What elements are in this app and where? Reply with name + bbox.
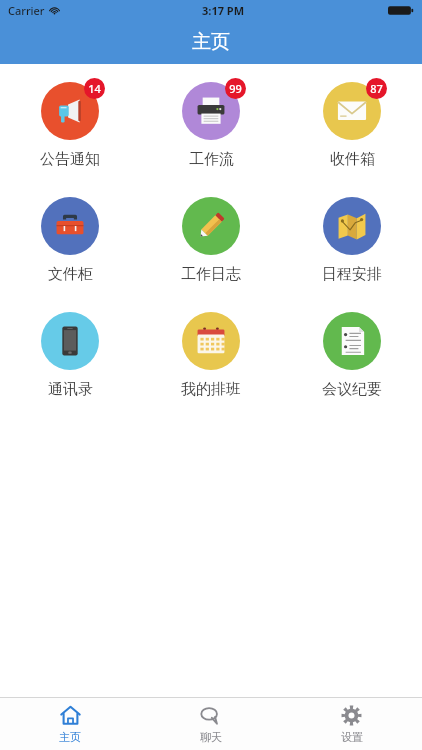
button[interactable]: 会议纪要 [311, 310, 393, 401]
staticText: 14 [88, 81, 101, 96]
staticText: 87 [370, 81, 383, 96]
staticText: 主页 [59, 730, 81, 744]
staticText: 文件柜 [48, 265, 93, 284]
staticText: 聊天 [200, 730, 222, 744]
button[interactable]: 我的排班 [170, 310, 252, 401]
button[interactable]: 设置 [281, 698, 422, 750]
staticText: 会议纪要 [322, 380, 382, 399]
staticText: 3:17 PM [202, 3, 245, 18]
staticText: Carrier [8, 3, 45, 18]
staticText: 工作日志 [181, 265, 241, 284]
staticText: 设置 [341, 730, 363, 744]
button[interactable]: 87 [311, 80, 393, 171]
staticText: 公告通知 [40, 150, 100, 169]
button[interactable]: 14 [29, 80, 111, 171]
button[interactable]: 工作日志 [170, 195, 252, 286]
button[interactable]: 文件柜 [29, 195, 111, 286]
staticText: 我的排班 [181, 380, 241, 399]
button[interactable]: 通讯录 [29, 310, 111, 401]
staticText: 通讯录 [48, 380, 93, 399]
staticText: 主页 [192, 30, 230, 54]
button[interactable]: 日程安排 [311, 195, 393, 286]
staticText: 日程安排 [322, 265, 382, 284]
button[interactable]: 聊天 [140, 698, 281, 750]
button[interactable]: 99 [170, 80, 252, 171]
button[interactable]: 主页 [0, 698, 140, 750]
staticText: 99 [229, 81, 242, 96]
staticText: 收件箱 [330, 150, 375, 169]
staticText: 工作流 [189, 150, 234, 169]
